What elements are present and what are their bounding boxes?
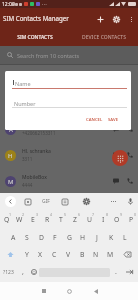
button[interactable]: L [118,227,132,245]
button[interactable]: K [104,227,118,245]
button[interactable]: CANCEL [84,114,105,124]
button[interactable]: M [0,168,138,194]
button[interactable]: Settings [108,11,124,27]
staticText: Hl. schranka [22,148,51,155]
button[interactable]: N [89,245,103,263]
button[interactable]: Y [20,245,33,263]
staticText: C [52,250,57,259]
button[interactable]: T [54,209,68,227]
staticText: L [123,233,127,242]
button[interactable]: Call [123,122,137,136]
button[interactable]: Keyboard settings [81,196,92,207]
staticText: MobileBox [22,174,47,181]
staticText: 3311 [22,156,33,162]
button[interactable]: Message [109,174,123,188]
staticText: ?123 [3,269,14,276]
button[interactable]: , [17,263,28,281]
button[interactable]: . [110,263,121,281]
staticText: J [96,233,98,242]
staticText: 12:00 [2,1,15,8]
button[interactable]: More options [124,12,138,26]
button[interactable]: H [76,227,90,245]
button[interactable]: R [40,209,54,227]
button[interactable]: Clipboard [59,196,70,207]
button[interactable]: W [13,209,26,227]
button[interactable]: Dial pad [112,150,128,166]
staticText: K [109,233,114,242]
staticText: M [8,178,14,186]
button[interactable]: Call [123,174,137,188]
staticText: GIF [42,198,50,205]
button[interactable]: Call [123,148,137,162]
staticText: V [66,250,71,259]
button[interactable]: F [48,227,62,245]
staticText: SIM Contacts Manager [3,14,69,22]
staticText: E [31,215,35,224]
button[interactable]: Shift [0,245,20,263]
staticText: 9 [120,212,123,217]
staticText: N [93,250,99,259]
staticText: G [67,233,72,242]
button[interactable]: A [0,116,138,142]
staticText: 3 [36,212,39,217]
button[interactable]: Close toolbar [5,196,16,207]
staticText: F [53,233,57,242]
button[interactable]: Recents [36,283,52,299]
staticText: . [115,267,117,277]
button[interactable]: Q [0,209,13,227]
staticText: Z [73,215,77,224]
button[interactable]: Enter [121,263,138,281]
button[interactable]: Backspace [117,245,138,263]
button[interactable]: C [47,245,61,263]
staticText: +420662153311 [22,130,56,136]
button[interactable]: D [34,227,48,245]
button[interactable]: P [124,209,138,227]
staticText: B [80,250,85,259]
button[interactable]: SIM CONTACTS [0,30,69,46]
button[interactable]: E [26,209,40,227]
button[interactable]: Emoji [28,263,39,281]
button[interactable]: M [103,245,117,263]
button[interactable]: Message [109,148,123,162]
button[interactable]: X [33,245,47,263]
staticText: CANCEL [86,116,103,122]
staticText: U [87,215,92,224]
staticText: Number [14,100,36,107]
button[interactable]: Back [88,283,104,299]
button[interactable]: DEVICE CONTACTS [69,30,138,46]
button[interactable]: I [96,209,110,227]
button[interactable]: ?123 [0,263,17,281]
button[interactable]: A [6,227,20,245]
button[interactable]: SAVE [106,114,121,124]
button[interactable]: S [20,227,34,245]
staticText: ⋯ [42,1,47,7]
button[interactable]: GIF [39,196,52,207]
button[interactable]: O [110,209,124,227]
staticText: A [11,233,16,242]
button[interactable]: B [75,245,89,263]
button[interactable]: Z [68,209,82,227]
staticText: X [38,250,42,259]
button[interactable]: Stickers [22,196,33,207]
button[interactable]: V [61,245,75,263]
button[interactable]: More tools [107,196,120,207]
button[interactable]: J [90,227,104,245]
button[interactable]: H [0,142,138,168]
staticText: DEVICE CONTACTS [82,34,126,41]
staticText: Search from 10 contacts [17,52,80,59]
staticText: 2 [22,212,25,217]
button[interactable]: U [82,209,96,227]
button[interactable]: Message [109,122,123,136]
staticText: H [80,233,86,242]
staticText: SAVE [108,116,119,122]
button[interactable]: G [62,227,76,245]
staticText: I [102,215,105,224]
button[interactable]: Home [61,283,77,299]
staticText: D [39,233,44,242]
button[interactable]: Voice input [125,196,136,207]
button[interactable]: Add contact [92,11,108,27]
staticText: H [8,152,13,160]
button[interactable]: Search from 10 contacts [0,48,138,62]
